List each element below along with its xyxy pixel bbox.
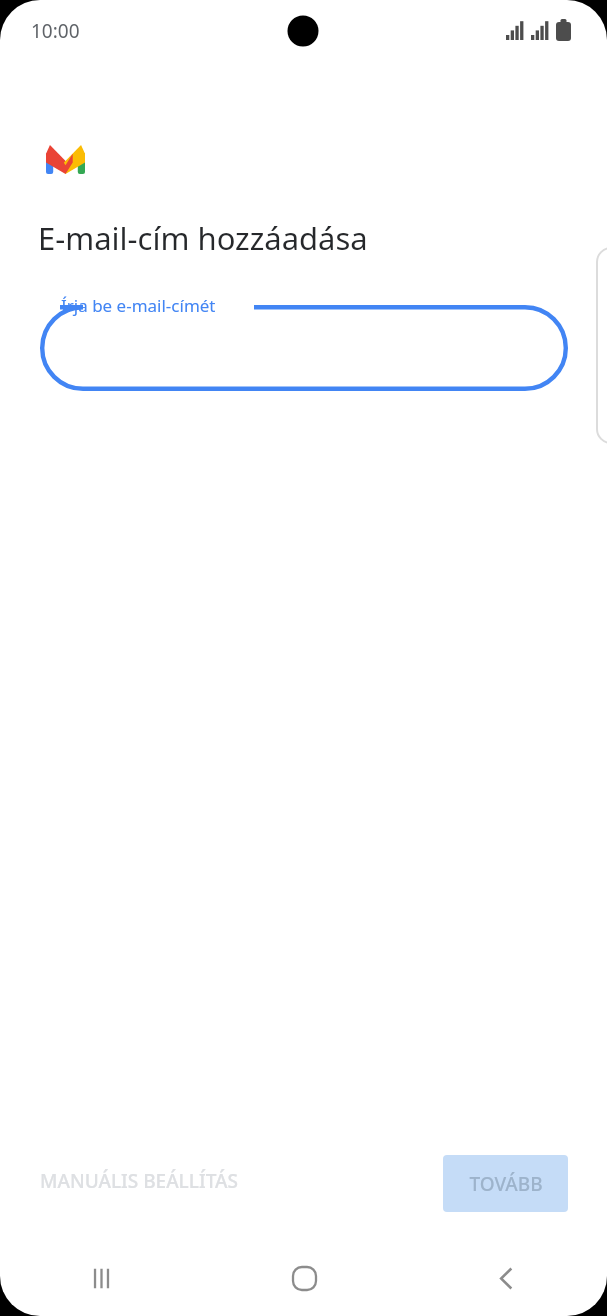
staticText: TOVÁBB — [469, 1171, 543, 1197]
staticText: Írja be e-mail-címét — [61, 294, 216, 317]
button[interactable]: Recent apps — [0, 1240, 203, 1316]
button[interactable]: Back — [405, 1240, 607, 1316]
button[interactable]: MANUÁLIS BEÁLLÍTÁS — [24, 1156, 254, 1206]
button[interactable]: TOVÁBB — [443, 1155, 568, 1212]
button[interactable]: Home — [203, 1240, 405, 1316]
staticText: E-mail-cím hozzáadása — [38, 217, 368, 259]
staticText: MANUÁLIS BEÁLLÍTÁS — [40, 1168, 238, 1194]
staticText: 10:00 — [31, 18, 80, 44]
button[interactable]: Írja be e-mail-címét — [40, 305, 568, 391]
